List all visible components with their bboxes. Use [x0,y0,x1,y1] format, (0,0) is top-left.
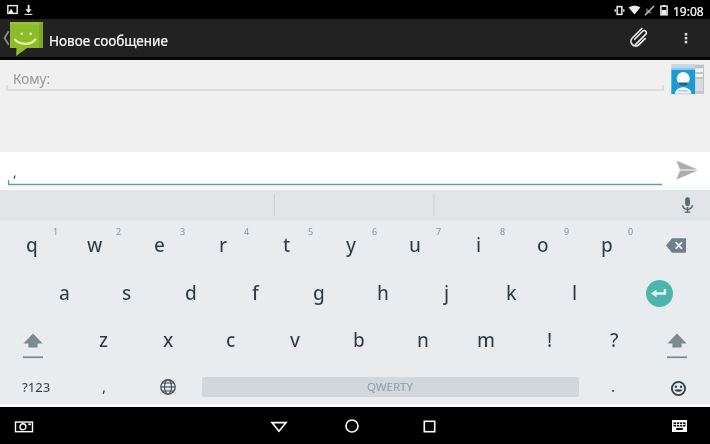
button[interactable]: Select contact [668,61,706,97]
button[interactable]: v [265,317,325,363]
staticText: 8 [500,225,506,237]
button[interactable]: b [329,317,389,363]
button[interactable]: x [138,317,198,363]
staticText: h [377,280,389,306]
staticText: . [611,376,616,396]
button[interactable]: QWERTY [202,377,579,397]
staticText: , [102,376,107,396]
button[interactable]: , [6,156,662,186]
staticText: 1 [53,225,59,237]
button[interactable]: s [96,270,158,316]
staticText: 0 [628,225,634,237]
button[interactable]: ! [520,317,580,363]
staticText: QWERTY [367,379,414,395]
button[interactable]: y [320,222,382,268]
staticText: ? [610,327,619,353]
staticText: ! [547,327,553,353]
staticText: y [346,232,357,258]
staticText: o [537,232,549,258]
staticText: a [59,280,70,306]
button[interactable]: Back [256,410,302,442]
button[interactable]: g [288,270,350,316]
staticText: m [477,327,495,353]
button[interactable]: u [384,222,446,268]
staticText: 3 [180,225,186,237]
staticText: l [572,280,578,306]
staticText: r [219,232,228,258]
button[interactable]: Navigate up [0,26,12,50]
staticText: 2 [116,225,122,237]
staticText: j [444,280,450,306]
button[interactable]: Change keyboard language [152,371,184,403]
button[interactable]: Voice input [674,192,701,218]
staticText: ?123 [22,378,51,396]
staticText: b [353,327,365,353]
button[interactable]: Новое сообщение [9,20,189,57]
staticText: Кому: [13,70,51,88]
staticText: 9 [564,225,570,237]
button[interactable]: Screenshot [10,412,38,440]
button[interactable]: Shift [655,323,699,369]
button[interactable]: p [576,222,638,268]
staticText: i [476,232,482,258]
staticText: p [601,232,613,258]
button[interactable]: w [64,222,126,268]
staticText: d [185,280,197,306]
staticText: 5 [308,225,314,237]
button[interactable]: Emoji [662,372,694,404]
button[interactable]: . [585,366,641,406]
staticText: 7 [436,225,442,237]
button[interactable]: ? [584,317,644,363]
staticText: Новое сообщение [49,32,168,50]
button[interactable]: t [256,222,318,268]
staticText: n [417,327,429,353]
button[interactable]: Keyboard [665,412,693,440]
staticText: , [13,162,17,181]
button[interactable]: m [456,317,516,363]
button[interactable]: , [76,366,132,406]
button[interactable]: z [74,317,134,363]
button[interactable]: Enter [636,270,682,316]
button[interactable]: Send [670,154,704,186]
staticText: 19:08 [673,3,704,17]
button[interactable]: h [352,270,414,316]
staticText: w [87,232,103,258]
staticText: c [226,327,236,353]
button[interactable]: c [201,317,261,363]
staticText: 4 [244,225,250,237]
button[interactable]: i [448,222,510,268]
staticText: x [163,327,174,353]
staticText: z [99,327,109,353]
button[interactable]: f [224,270,286,316]
button[interactable]: a [33,270,95,316]
button[interactable]: Shift [11,323,55,369]
button[interactable]: Home [329,410,375,442]
button[interactable]: q [1,222,63,268]
staticText: q [26,232,38,258]
button[interactable]: o [512,222,574,268]
button[interactable]: Backspace [653,223,699,268]
button[interactable]: Recent apps [406,410,452,442]
button[interactable]: l [544,270,606,316]
button[interactable]: r [192,222,254,268]
staticText: e [154,232,165,258]
button[interactable]: n [393,317,453,363]
button[interactable]: j [416,270,478,316]
staticText: u [409,232,421,258]
button[interactable]: Кому: [6,66,664,94]
staticText: 6 [372,225,378,237]
staticText: s [122,280,132,306]
button[interactable]: d [160,270,222,316]
button[interactable]: k [480,270,542,316]
button[interactable]: e [128,222,190,268]
button[interactable]: More options [668,20,704,56]
staticText: k [506,280,517,306]
staticText: f [252,280,259,306]
button[interactable]: ?123 [8,367,64,407]
button[interactable]: Attach [621,20,657,56]
staticText: v [290,327,301,353]
staticText: g [313,280,325,306]
staticText: t [283,232,291,258]
